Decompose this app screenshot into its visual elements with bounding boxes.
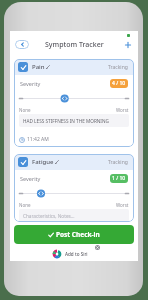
staticText: Add to Siri (65, 251, 88, 257)
staticText: Severity (20, 80, 41, 87)
button[interactable]: Severity slider (19, 94, 129, 103)
staticText: None (19, 202, 31, 208)
staticText: 4 / 10 (112, 80, 126, 87)
button[interactable]: HAD LESS STIFFNESS IN THE MORNING (19, 114, 129, 127)
staticText: Symptom Tracker (45, 40, 104, 49)
button[interactable]: Dismiss (95, 245, 100, 250)
staticText: Worst (116, 202, 129, 208)
button[interactable]: Back (15, 40, 29, 49)
staticText: Worst (116, 107, 129, 113)
staticText: Severity (20, 175, 41, 182)
button[interactable]: Pain (14, 59, 134, 147)
button[interactable]: Add to Siri (51, 249, 90, 259)
staticText: Fatigue (32, 158, 54, 166)
button[interactable]: 1 / 10 (110, 174, 128, 183)
staticText: Post Check-in (56, 230, 100, 239)
staticText: Characteristics, Notes... (23, 213, 75, 219)
staticText: Tracking (108, 159, 128, 166)
staticText: 11:42 AM (27, 136, 49, 143)
staticText: 1 / 10 (112, 175, 126, 182)
button[interactable]: Fatigue (14, 154, 134, 222)
staticText: Tracking (108, 64, 128, 71)
button[interactable]: 4 / 10 (110, 79, 128, 88)
button[interactable]: Add symptom (123, 40, 133, 50)
button[interactable]: Severity slider (19, 189, 129, 198)
staticText: HAD LESS STIFFNESS IN THE MORNING (23, 118, 109, 124)
button[interactable]: Characteristics, Notes... (19, 209, 129, 222)
staticText: Pain (32, 63, 45, 71)
button[interactable]: Post Check-in (14, 225, 134, 244)
staticText: None (19, 107, 31, 113)
